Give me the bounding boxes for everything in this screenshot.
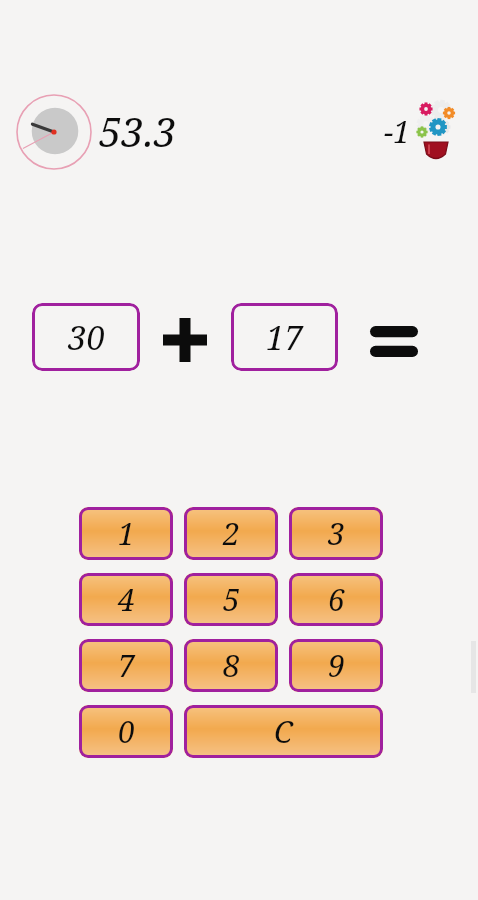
button[interactable]: 7 xyxy=(79,639,173,692)
staticText: 8 xyxy=(223,645,240,686)
button[interactable]: 5 xyxy=(184,573,278,626)
staticText: 7 xyxy=(118,645,135,686)
staticText: 17 xyxy=(266,315,303,360)
staticText: C xyxy=(274,711,293,752)
button[interactable]: 6 xyxy=(289,573,383,626)
button[interactable]: Timer xyxy=(16,94,92,170)
button[interactable]: 0 xyxy=(79,705,173,758)
staticText: 6 xyxy=(328,579,345,620)
button[interactable]: 17 xyxy=(231,303,338,371)
button[interactable]: Hints xyxy=(413,94,461,166)
button[interactable]: C xyxy=(184,705,383,758)
button[interactable]: 8 xyxy=(184,639,278,692)
button[interactable]: 3 xyxy=(289,507,383,560)
staticText: 1 xyxy=(118,513,135,554)
staticText: 5 xyxy=(223,579,240,620)
button[interactable]: 1 xyxy=(79,507,173,560)
button[interactable]: 4 xyxy=(79,573,173,626)
button[interactable]: 30 xyxy=(32,303,140,371)
staticText: 0 xyxy=(118,711,135,752)
staticText: 2 xyxy=(223,513,240,554)
staticText: -1 xyxy=(384,111,411,152)
staticText: 9 xyxy=(328,645,345,686)
button[interactable]: 2 xyxy=(184,507,278,560)
staticText: 4 xyxy=(118,579,135,620)
staticText: 53.3 xyxy=(99,104,177,158)
staticText: 3 xyxy=(328,513,345,554)
button[interactable]: 9 xyxy=(289,639,383,692)
staticText: 30 xyxy=(68,315,105,360)
